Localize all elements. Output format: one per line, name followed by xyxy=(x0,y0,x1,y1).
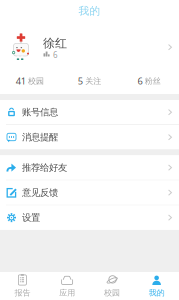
staticText: 报告 xyxy=(14,288,30,298)
staticText: 设置 xyxy=(22,212,40,223)
staticText: 6 xyxy=(53,49,58,60)
button[interactable]: 设置 xyxy=(0,205,179,230)
staticText: 意见反馈 xyxy=(22,187,58,198)
staticText: 应用 xyxy=(59,288,75,298)
button[interactable]: 5 xyxy=(60,69,119,93)
button[interactable]: 41 xyxy=(0,69,60,93)
button[interactable]: 校园 xyxy=(89,272,134,300)
staticText: 41 xyxy=(16,75,26,87)
staticText: 我的 xyxy=(149,288,165,298)
staticText: 粉丝 xyxy=(145,76,161,86)
button[interactable]: 消息提醒 xyxy=(0,125,179,149)
button[interactable]: 推荐给好友 xyxy=(0,155,179,180)
button[interactable]: 账号信息 xyxy=(0,100,179,124)
staticText: 6 xyxy=(137,75,142,87)
staticText: 我的 xyxy=(78,4,100,17)
staticText: 推荐给好友 xyxy=(22,162,67,173)
staticText: 徐红 xyxy=(43,36,67,51)
staticText: 5 xyxy=(78,75,83,87)
staticText: 账号信息 xyxy=(22,106,58,118)
staticText: 校园 xyxy=(104,288,120,298)
staticText: 校园 xyxy=(28,76,44,86)
staticText: 关注 xyxy=(85,76,101,86)
button[interactable]: 6 xyxy=(119,69,179,93)
button[interactable]: 徐红 xyxy=(0,22,179,68)
button[interactable]: 应用 xyxy=(45,272,90,300)
button[interactable]: 报告 xyxy=(0,272,45,300)
button[interactable]: 意见反馈 xyxy=(0,180,179,205)
button[interactable]: 我的 xyxy=(134,272,179,300)
staticText: 消息提醒 xyxy=(22,131,58,143)
